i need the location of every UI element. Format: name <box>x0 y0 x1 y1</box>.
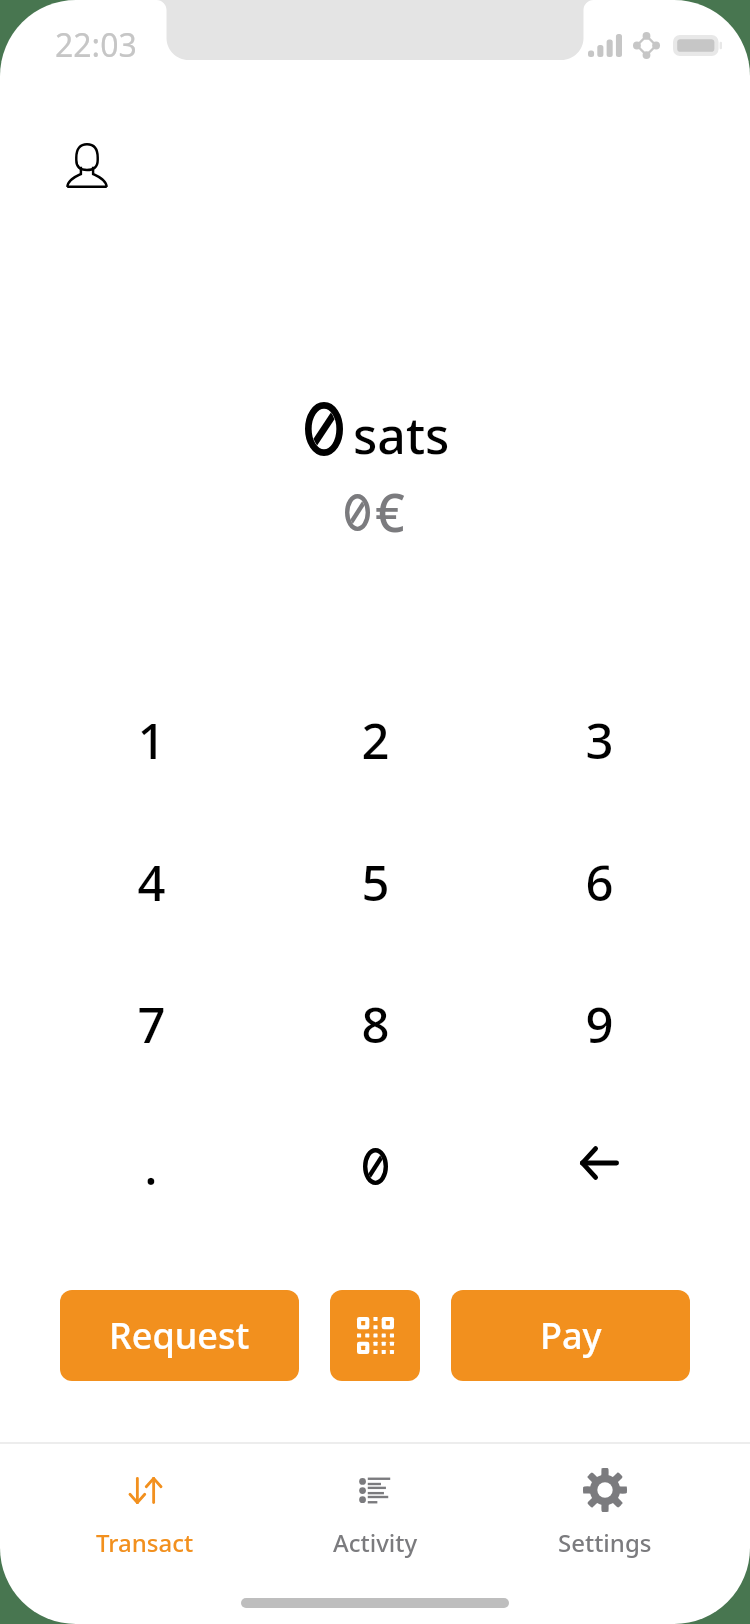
staticText: 7 <box>137 991 166 1058</box>
button[interactable]: 1 <box>39 669 263 811</box>
button[interactable]: Activity <box>260 1444 490 1569</box>
button[interactable]: 5 <box>263 811 487 953</box>
staticText: 1 <box>137 707 166 774</box>
staticText: . <box>144 1133 158 1200</box>
button[interactable]: Pay <box>451 1290 690 1381</box>
button[interactable]: Settings <box>490 1444 720 1569</box>
button[interactable] <box>263 1095 487 1237</box>
button[interactable]: 6 <box>487 811 711 953</box>
staticText: 2 <box>361 707 390 774</box>
staticText: Pay <box>540 1311 602 1360</box>
staticText: 8 <box>361 991 390 1058</box>
button[interactable]: 2 <box>263 669 487 811</box>
staticText: 9 <box>585 991 614 1058</box>
button[interactable]: Profile <box>47 125 127 205</box>
button[interactable]: 3 <box>487 669 711 811</box>
button[interactable]: Backspace <box>487 1095 711 1237</box>
button[interactable]: 9 <box>487 953 711 1095</box>
staticText: Request <box>109 1311 250 1360</box>
staticText: 5 <box>361 849 390 916</box>
button[interactable]: 8 <box>263 953 487 1095</box>
button[interactable]: 7 <box>39 953 263 1095</box>
staticText: sats <box>353 401 450 469</box>
staticText: 22:03 <box>55 23 137 67</box>
staticText: Transact <box>96 1526 194 1559</box>
staticText: 4 <box>137 849 166 916</box>
button[interactable]: . <box>39 1095 263 1237</box>
staticText: Activity <box>333 1526 418 1559</box>
button[interactable]: 4 <box>39 811 263 953</box>
staticText: Settings <box>558 1526 652 1559</box>
staticText: € <box>375 476 405 547</box>
staticText: 3 <box>585 707 614 774</box>
button[interactable]: Scan QR code <box>330 1290 420 1381</box>
button[interactable]: Request <box>60 1290 299 1381</box>
staticText: 6 <box>585 849 614 916</box>
button[interactable]: Transact <box>30 1444 260 1569</box>
